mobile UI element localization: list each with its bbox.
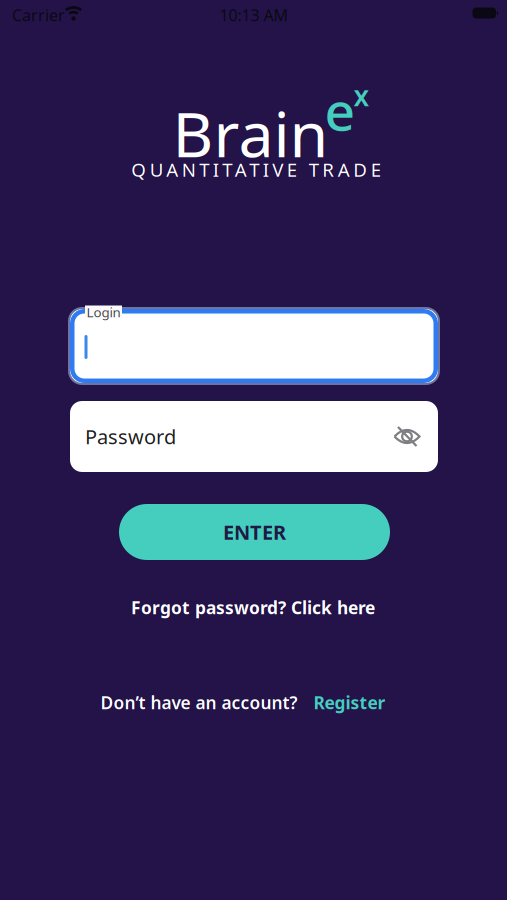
staticText: Register <box>313 691 385 714</box>
staticText: Don’t have an account? <box>100 691 297 714</box>
staticText: x <box>353 77 369 114</box>
staticText: Login <box>86 303 120 321</box>
staticText: Carrier <box>12 4 65 26</box>
button[interactable]: Show password <box>393 424 421 448</box>
button[interactable]: Forgot password? Click here <box>131 596 375 619</box>
staticText: Brain <box>172 91 328 175</box>
button[interactable]: Register <box>313 691 385 714</box>
staticText: 10:13 AM <box>219 4 288 26</box>
button[interactable]: ENTER <box>119 504 390 560</box>
staticText: Password <box>85 423 176 450</box>
staticText: Forgot password? Click here <box>131 596 375 619</box>
staticText: ENTER <box>223 519 286 545</box>
staticText: QUANTITATIVE TRADE <box>131 157 381 182</box>
staticText: e <box>324 75 355 145</box>
